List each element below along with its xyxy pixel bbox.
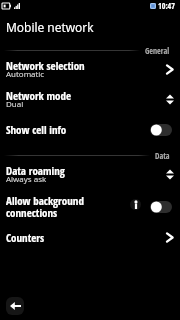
- staticText: Network selection: [6, 58, 85, 73]
- staticText: General: [145, 45, 170, 55]
- staticText: connections: [6, 205, 58, 220]
- button[interactable]: Data roaming: [0, 159, 180, 187]
- button[interactable]: Network mode: [0, 84, 180, 112]
- staticText: Automatic: [6, 68, 45, 79]
- button[interactable]: Network selection: [0, 54, 180, 82]
- staticText: Data: [155, 150, 170, 160]
- other: More information: [130, 199, 141, 210]
- button[interactable]: Show cell info: [0, 115, 180, 143]
- button[interactable]: Allow background: [0, 190, 180, 222]
- staticText: Allow background: [6, 193, 84, 208]
- staticText: 10:47: [158, 0, 175, 11]
- staticText: Show cell info: [6, 122, 67, 137]
- staticText: Always ask: [6, 173, 47, 184]
- button[interactable]: Counters: [0, 223, 180, 251]
- staticText: Mobile network: [6, 19, 94, 35]
- staticText: Counters: [6, 230, 45, 245]
- button[interactable]: Back: [6, 297, 24, 315]
- staticText: Data roaming: [6, 163, 65, 178]
- staticText: Dual: [6, 98, 24, 109]
- staticText: Network mode: [6, 88, 71, 103]
